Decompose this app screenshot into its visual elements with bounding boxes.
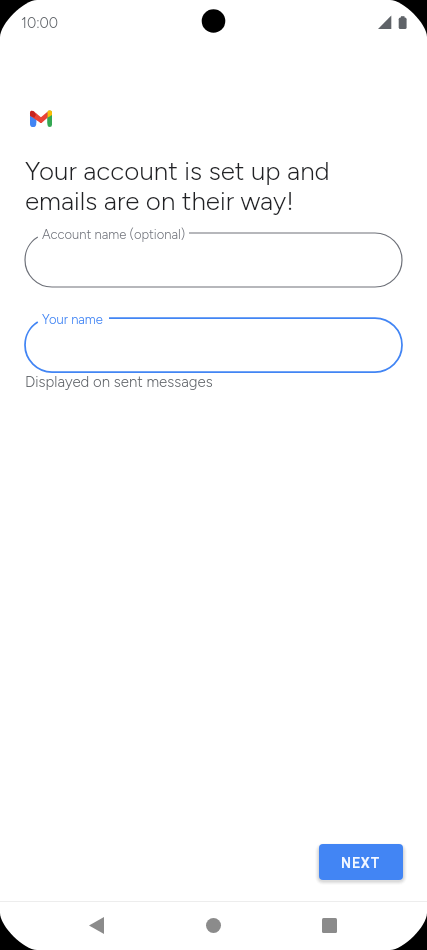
button[interactable]: Your name bbox=[25, 318, 402, 372]
staticText: Displayed on sent messages bbox=[25, 373, 213, 391]
staticText: NEXT bbox=[341, 855, 381, 871]
button[interactable]: Recent apps bbox=[306, 901, 352, 950]
staticText: Your account is set up and emails are on… bbox=[25, 155, 330, 216]
button[interactable]: NEXT bbox=[319, 844, 403, 880]
staticText: Account name (optional) bbox=[42, 227, 186, 243]
button[interactable]: Home bbox=[190, 901, 236, 950]
staticText: 10:00 bbox=[21, 14, 59, 31]
staticText: Your name bbox=[42, 312, 103, 328]
button[interactable]: Account name (optional) bbox=[25, 233, 402, 287]
button[interactable]: Back bbox=[73, 901, 119, 950]
